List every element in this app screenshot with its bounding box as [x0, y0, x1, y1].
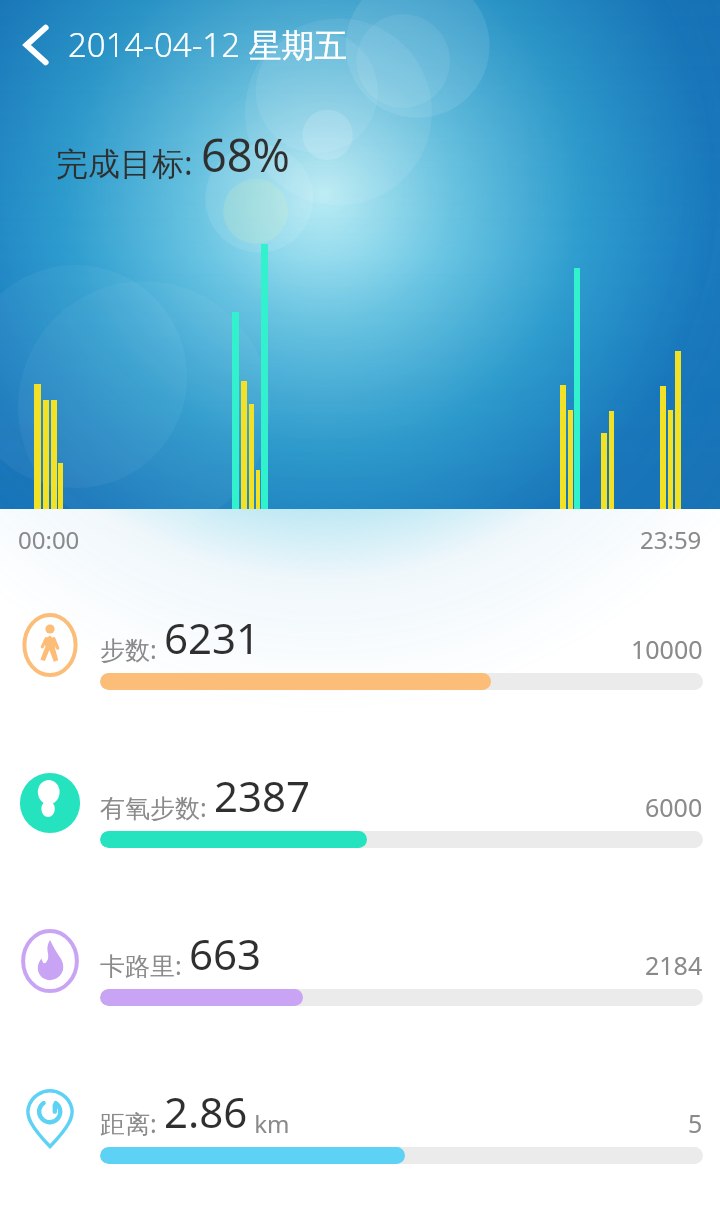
- button[interactable]: 卡路里:: [0, 925, 720, 1017]
- staticText: 68%: [201, 124, 290, 185]
- staticText: 6231: [164, 609, 261, 666]
- staticText: km: [248, 1107, 290, 1140]
- button[interactable]: 距离:: [0, 1083, 720, 1175]
- staticText: 步数:: [100, 632, 164, 666]
- staticText: 完成目标:: [56, 141, 201, 185]
- button[interactable]: Back: [6, 14, 68, 76]
- button[interactable]: 有氧步数:: [0, 767, 720, 859]
- staticText: 5: [688, 1106, 703, 1140]
- staticText: 6000: [645, 790, 703, 824]
- staticText: 663: [189, 925, 262, 982]
- staticText: 距离:: [100, 1106, 164, 1140]
- staticText: 10000: [631, 632, 703, 666]
- staticText: 卡路里:: [100, 948, 189, 982]
- button[interactable]: 步数:: [0, 609, 720, 701]
- staticText: 2184: [645, 948, 703, 982]
- staticText: 有氧步数:: [100, 790, 214, 824]
- staticText: 2014-04-12 星期五: [68, 22, 348, 67]
- staticText: 2387: [214, 767, 311, 824]
- staticText: 23:59: [640, 523, 702, 556]
- staticText: 00:00: [18, 523, 80, 556]
- staticText: 2.86: [164, 1083, 248, 1140]
